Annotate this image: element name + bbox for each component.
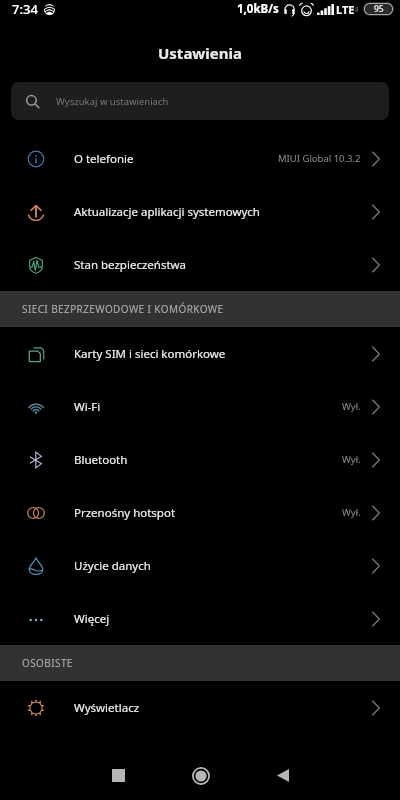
button[interactable]: Aktualizacje aplikacji systemowych: [0, 185, 400, 238]
staticText: Przenośny hotspot: [74, 505, 176, 521]
staticText: Wyświetlacz: [74, 700, 140, 716]
button[interactable]: Recents: [92, 751, 144, 800]
staticText: Wył.: [342, 506, 361, 519]
button[interactable]: Użycie danych: [0, 539, 400, 592]
staticText: Wi-Fi: [74, 399, 101, 415]
button[interactable]: Więcej: [0, 592, 400, 645]
staticText: MIUI Global 10.3.2: [278, 152, 361, 165]
staticText: Karty SIM i sieci komórkowe: [74, 346, 226, 362]
button[interactable]: Stan bezpieczeństwa: [0, 238, 400, 291]
staticText: Stan bezpieczeństwa: [74, 257, 187, 273]
button[interactable]: Wi-Fi: [0, 380, 400, 433]
button[interactable]: Karty SIM i sieci komórkowe: [0, 327, 400, 380]
button[interactable]: Back: [257, 751, 309, 800]
staticText: Więcej: [74, 611, 110, 627]
staticText: Wył.: [342, 453, 361, 466]
staticText: 1,0kB/s: [237, 1, 279, 17]
staticText: SIECI BEZPRZEWODOWE I KOMÓRKOWE: [22, 302, 224, 316]
staticText: Użycie danych: [74, 558, 151, 574]
staticText: LTE: [336, 2, 355, 17]
staticText: Aktualizacje aplikacji systemowych: [74, 204, 260, 220]
button[interactable]: Home: [175, 751, 227, 800]
button[interactable]: Wyświetlacz: [0, 681, 400, 734]
staticText: 95: [374, 3, 384, 15]
button[interactable]: Bluetooth: [0, 433, 400, 486]
staticText: Wył.: [342, 400, 361, 413]
button[interactable]: Wyszukaj w ustawieniach: [11, 82, 389, 120]
button[interactable]: O telefonie: [0, 132, 400, 185]
staticText: ‖: [355, 5, 359, 13]
staticText: O telefonie: [74, 151, 134, 167]
staticText: Bluetooth: [74, 452, 128, 468]
staticText: Ustawienia: [158, 43, 242, 63]
staticText: 7:34: [12, 0, 38, 18]
staticText: OSOBISTE: [22, 656, 73, 670]
staticText: Wyszukaj w ustawieniach: [56, 95, 169, 108]
button[interactable]: Przenośny hotspot: [0, 486, 400, 539]
